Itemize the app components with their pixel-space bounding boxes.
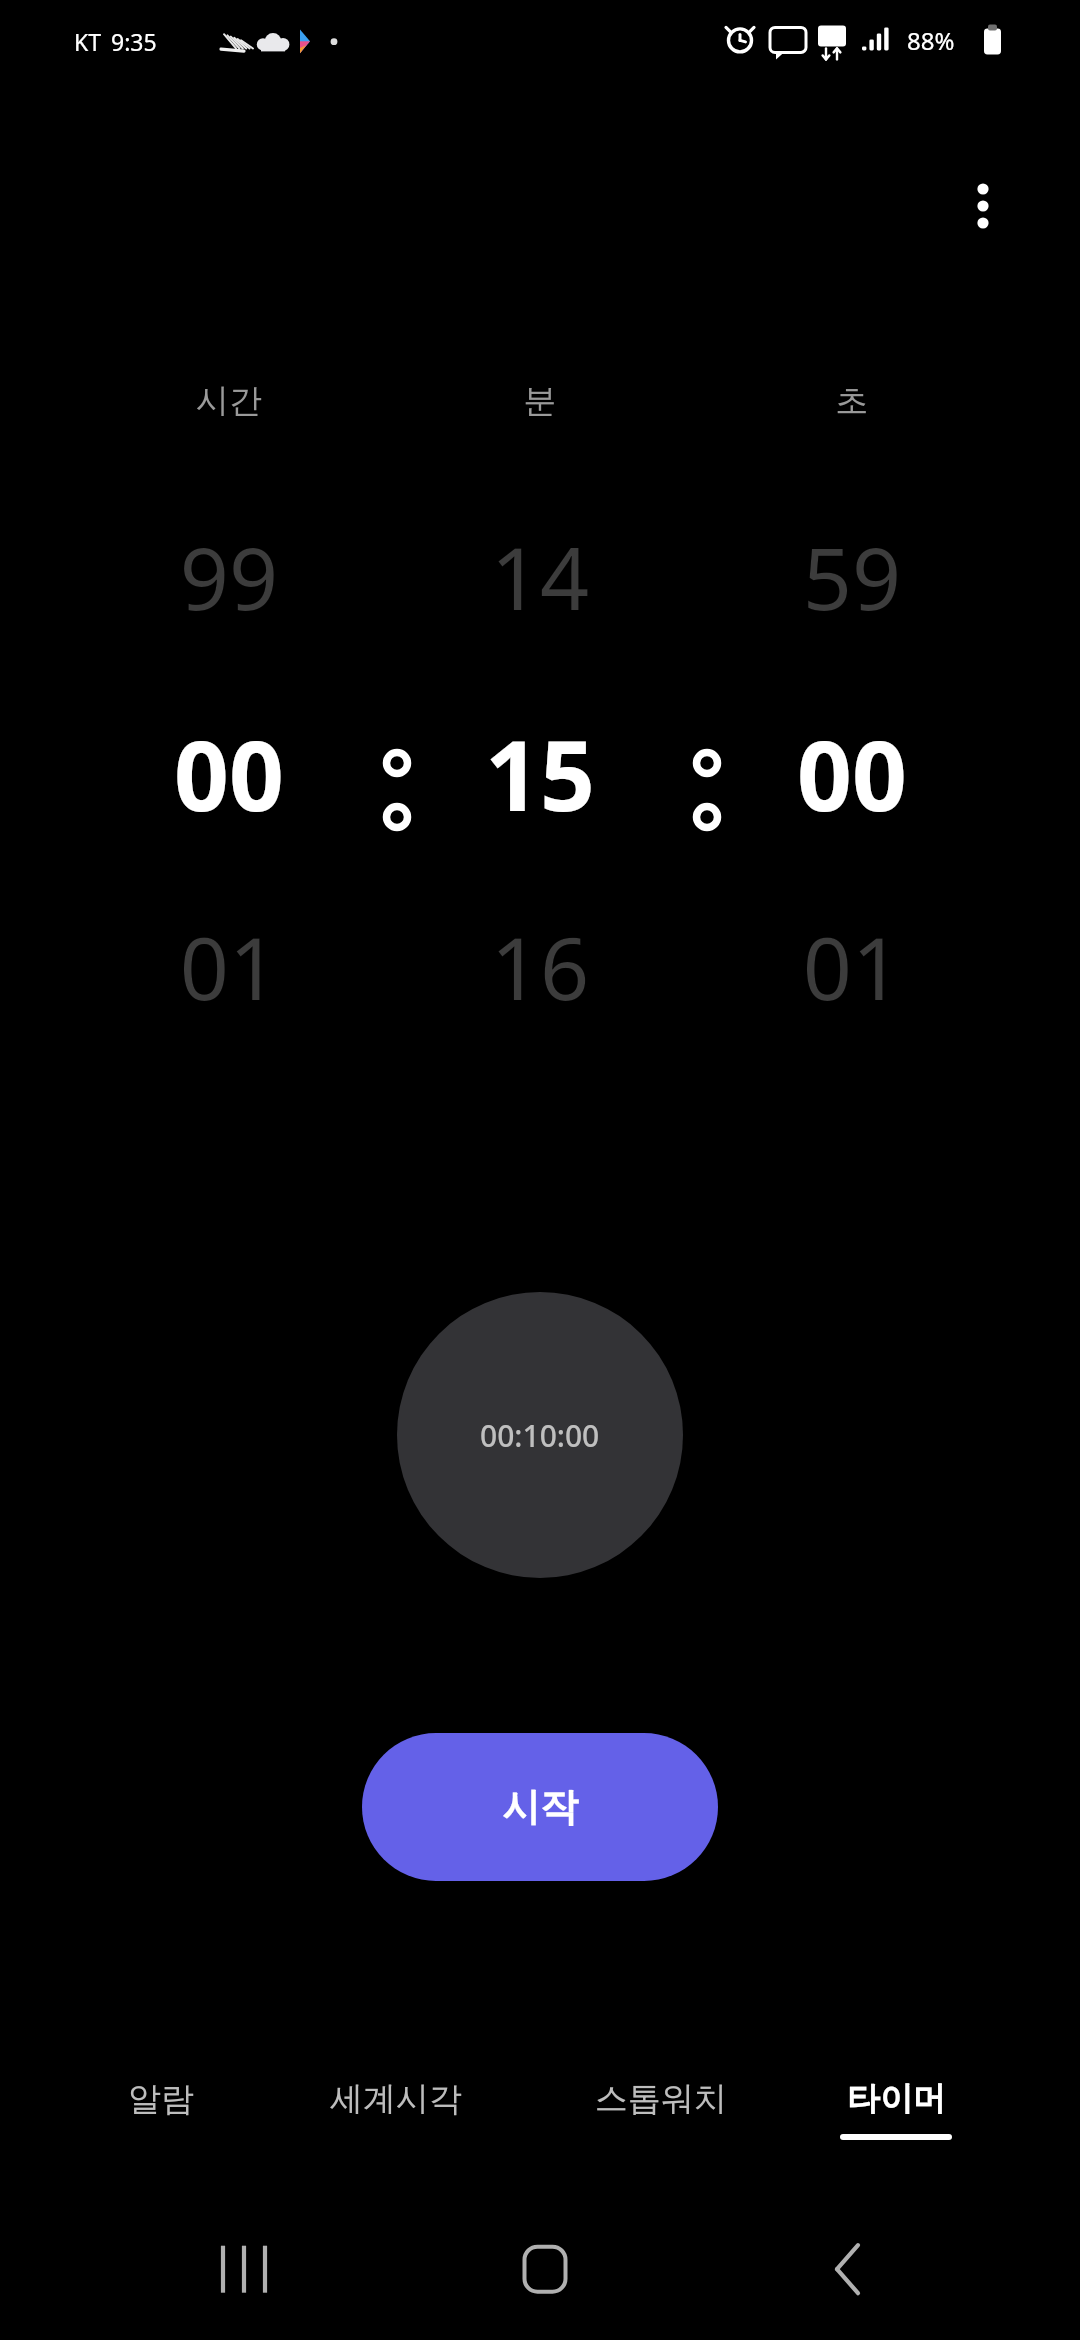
- staticText: 세계시각: [330, 2078, 462, 2120]
- staticText: 시작: [502, 1783, 578, 1831]
- button[interactable]: 59: [742, 490, 962, 1080]
- staticText: 01: [742, 908, 962, 1025]
- staticText: 9:35: [111, 26, 157, 57]
- button[interactable]: 99: [119, 490, 339, 1080]
- button[interactable]: Back: [786, 2222, 906, 2340]
- staticText: 14: [430, 518, 650, 635]
- staticText: 알람: [128, 2078, 194, 2120]
- staticText: 00:10:00: [480, 1415, 600, 1456]
- button[interactable]: Home: [485, 2222, 605, 2340]
- button[interactable]: 타이머: [779, 2050, 1013, 2180]
- staticText: 15: [430, 708, 650, 839]
- button[interactable]: 알람: [44, 2050, 278, 2180]
- staticText: KT: [74, 26, 102, 57]
- staticText: 타이머: [847, 2078, 946, 2120]
- button[interactable]: 세계시각: [279, 2050, 513, 2180]
- button[interactable]: 00:10:00: [397, 1292, 683, 1578]
- staticText: 스톱워치: [595, 2078, 727, 2120]
- button[interactable]: More options: [935, 158, 1031, 254]
- staticText: 초: [762, 380, 942, 422]
- button[interactable]: 스톱워치: [544, 2050, 778, 2180]
- staticText: 00: [742, 708, 962, 839]
- button[interactable]: 시작: [362, 1733, 718, 1881]
- staticText: 88%: [907, 24, 955, 57]
- button[interactable]: 14: [430, 490, 650, 1080]
- staticText: 00: [119, 708, 339, 839]
- staticText: 01: [119, 908, 339, 1025]
- staticText: 99: [119, 518, 339, 635]
- button[interactable]: Recent apps: [184, 2222, 304, 2340]
- staticText: 59: [742, 518, 962, 635]
- staticText: 분: [450, 380, 630, 422]
- staticText: 16: [430, 908, 650, 1025]
- staticText: 시간: [139, 380, 319, 422]
